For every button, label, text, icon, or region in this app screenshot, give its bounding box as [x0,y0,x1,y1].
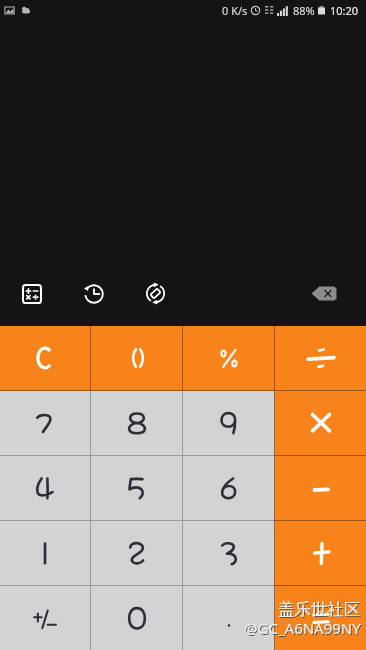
button[interactable]: Parentheses [91,326,182,390]
button[interactable]: 3 [183,521,274,585]
button[interactable]: 0 [91,586,182,650]
button[interactable]: 1 [0,521,90,585]
staticText: @GC_A6NA99NY [244,618,361,638]
button[interactable]: 4 [0,456,90,520]
staticText: 88% [293,3,315,18]
button[interactable]: Scientific calculator [11,273,52,314]
staticText: 0 K/s [222,3,248,18]
button[interactable]: 9 [183,391,274,455]
button[interactable]: History [73,273,114,314]
staticText: 盖乐世社区 [279,600,362,621]
staticText: 10:20 [330,3,359,18]
button[interactable]: Equals [275,586,366,650]
staticText: @GC_A6NA99NY [245,619,362,639]
button[interactable]: 5 [91,456,182,520]
button[interactable]: Multiply [275,391,366,455]
button[interactable]: 6 [183,456,274,520]
button[interactable]: Divide [275,326,366,390]
button[interactable]: Unit converter [135,273,176,314]
button[interactable]: Percent [183,326,274,390]
button[interactable]: Minus [275,456,366,520]
staticText: 盖乐世社区 [278,599,361,620]
button[interactable]: 7 [0,391,90,455]
button[interactable]: Plus minus [0,586,90,650]
button[interactable]: Plus [275,521,366,585]
button[interactable]: 2 [91,521,182,585]
button[interactable]: Clear [0,326,90,390]
button[interactable]: 8 [91,391,182,455]
button[interactable]: Decimal point [183,586,274,650]
button[interactable]: Backspace [303,278,345,308]
